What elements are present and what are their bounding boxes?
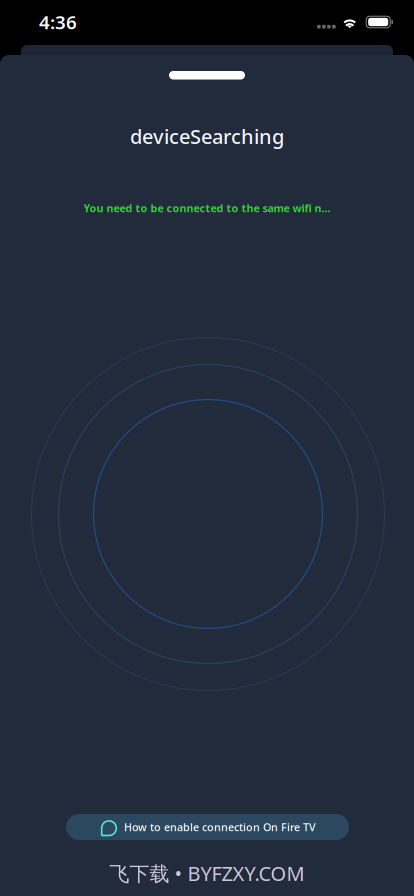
staticText: deviceSearching — [130, 123, 284, 150]
button[interactable]: Dismiss — [169, 71, 245, 79]
staticText: 4:36 — [39, 10, 77, 34]
staticText: You need to be connected to the same wif… — [83, 201, 330, 215]
staticText: 飞下载 • BYFZXY.COM — [109, 860, 304, 887]
staticText: How to enable connection On Fire TV — [124, 820, 316, 834]
button[interactable]: How to enable connection On Fire TV — [66, 814, 349, 840]
